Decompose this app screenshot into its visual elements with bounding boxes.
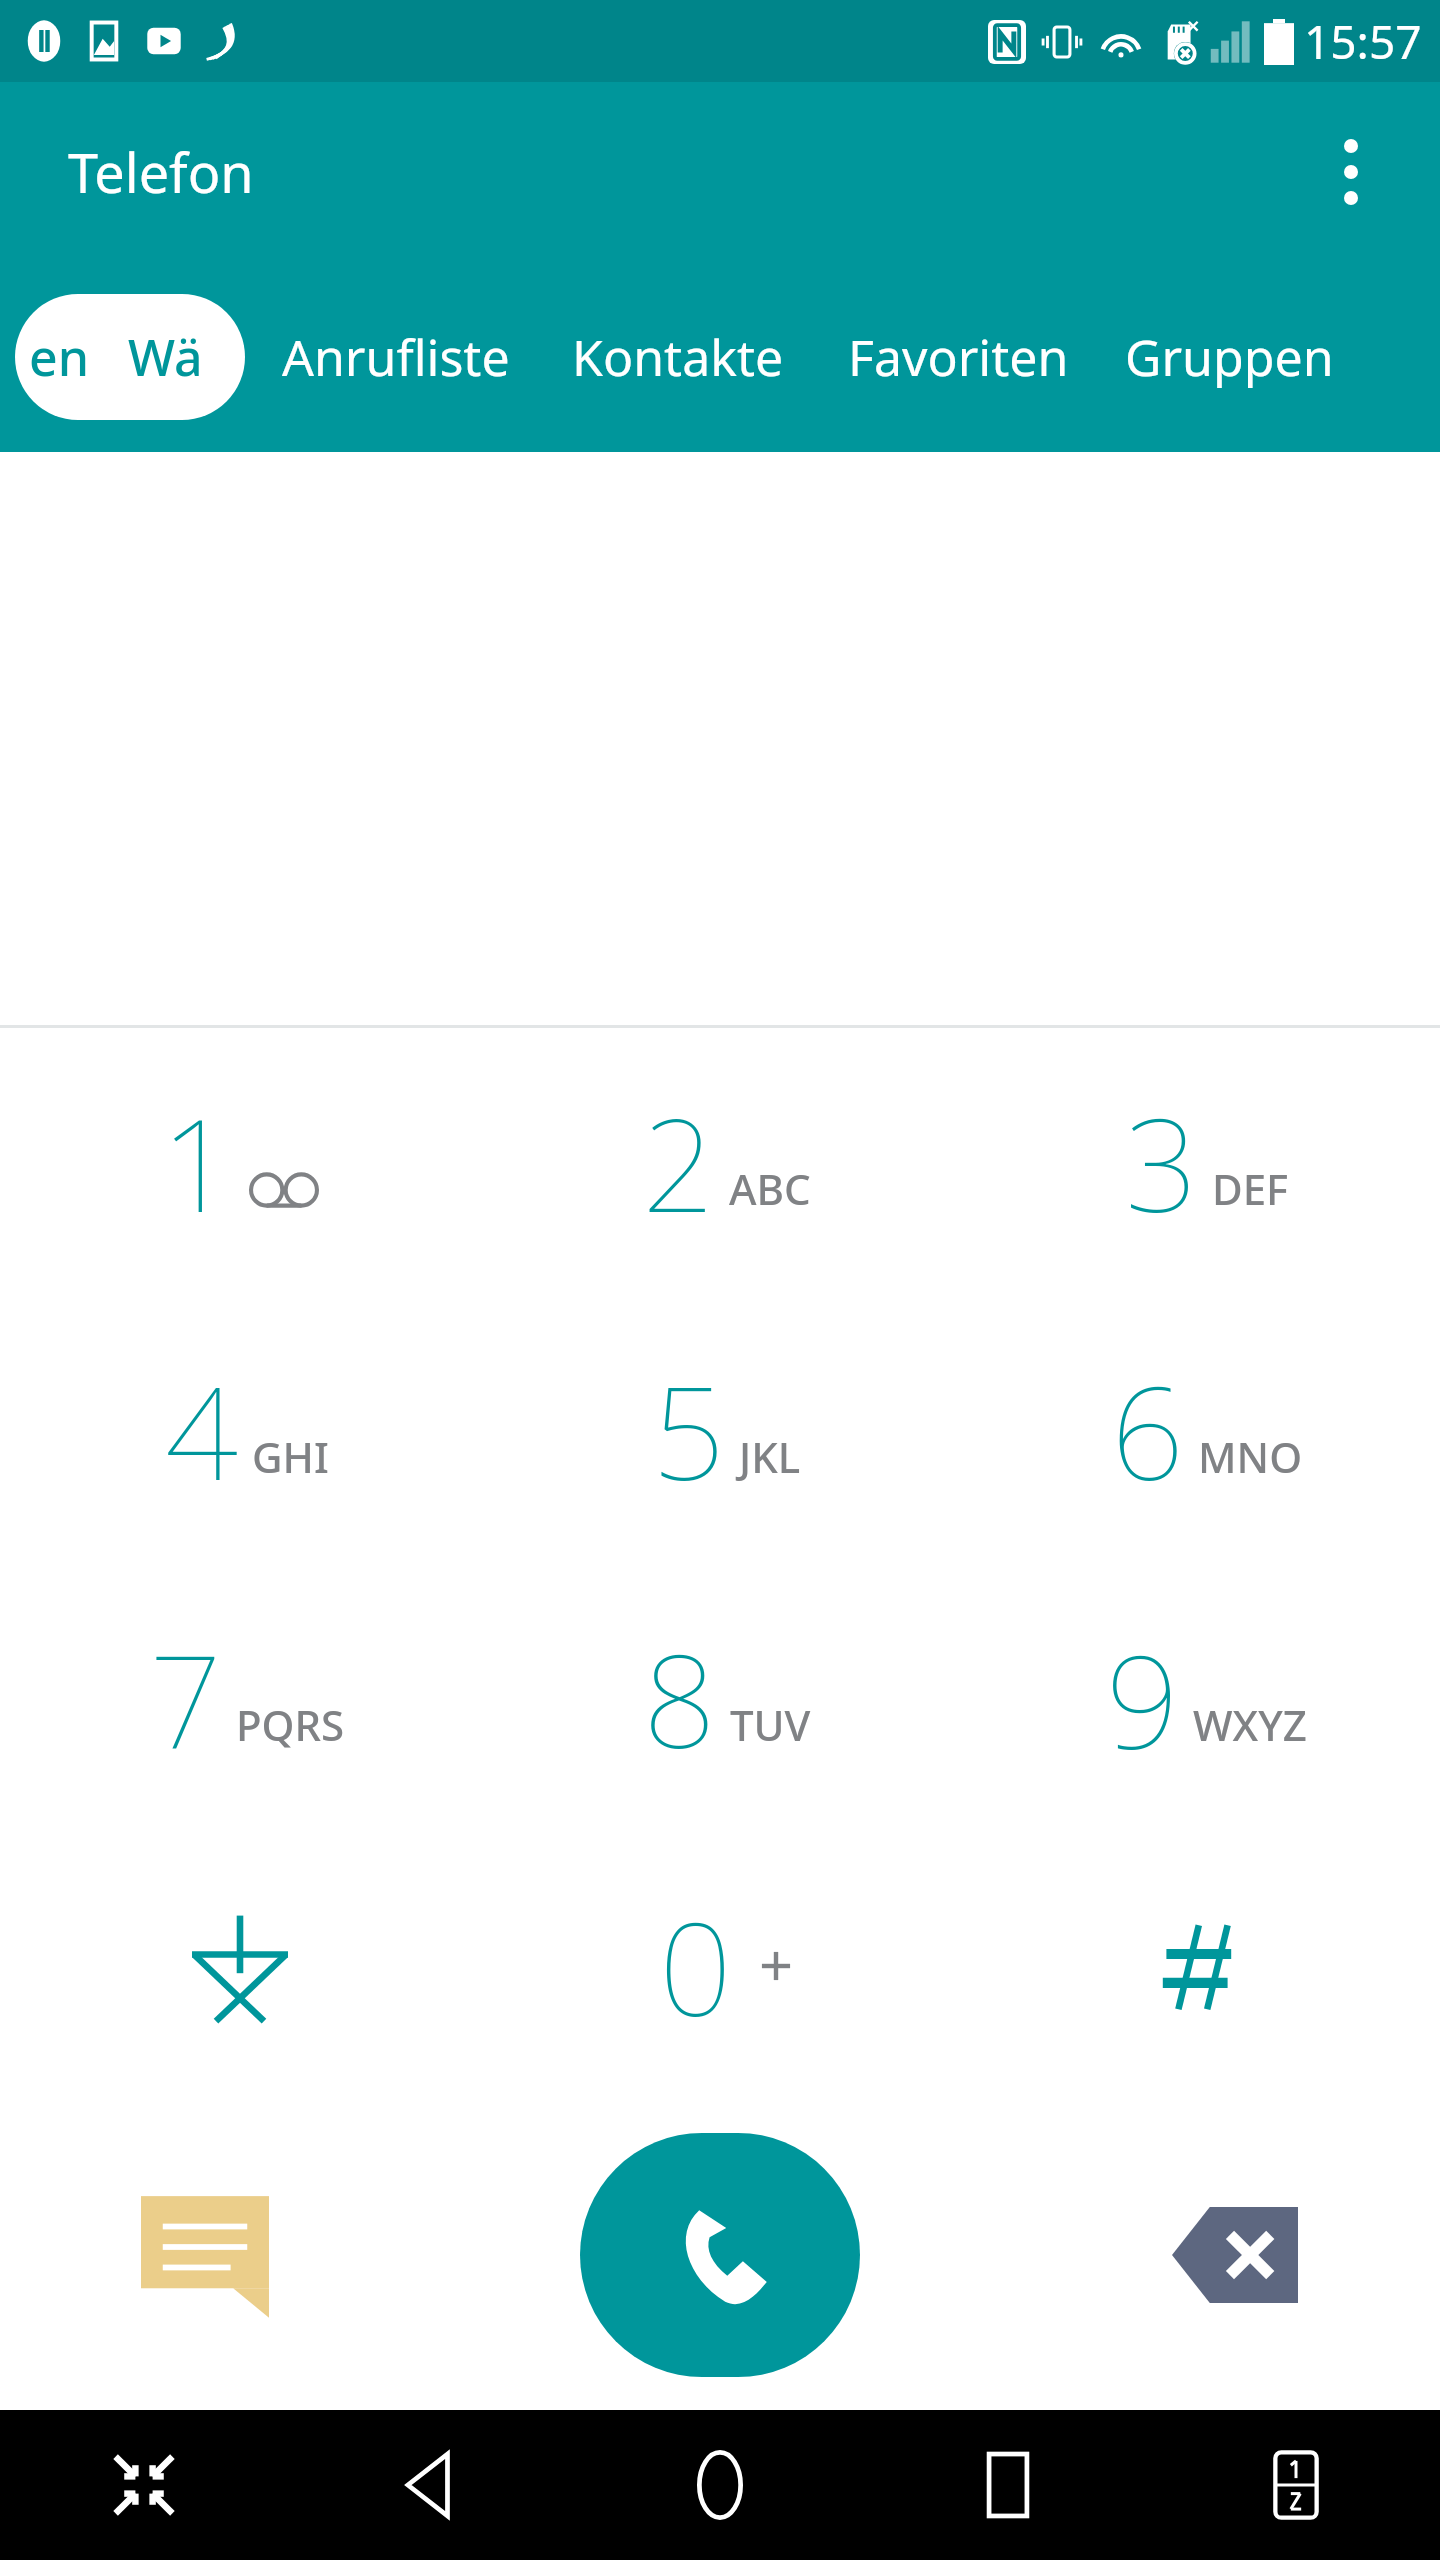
- staticText: MNO: [1198, 1428, 1303, 1485]
- button[interactable]: Split screen: [1152, 2410, 1440, 2560]
- staticText: WXYZ: [1193, 1696, 1307, 1753]
- staticText: DEF: [1212, 1160, 1289, 1217]
- button[interactable]: 2: [480, 1028, 960, 1296]
- staticText: TUV: [730, 1696, 811, 1753]
- staticText: ABC: [729, 1160, 811, 1217]
- staticText: en Wä: [29, 323, 203, 391]
- button[interactable]: Back: [288, 2410, 576, 2560]
- staticText: 3: [1125, 1075, 1198, 1249]
- button[interactable]: 9: [960, 1564, 1440, 1832]
- staticText: PQRS: [236, 1696, 345, 1753]
- staticText: Gruppen: [1125, 323, 1334, 391]
- button[interactable]: 5: [480, 1296, 960, 1564]
- button[interactable]: 8: [480, 1564, 960, 1832]
- button[interactable]: [0, 1832, 480, 2100]
- button[interactable]: [960, 1832, 1440, 2100]
- staticText: Kontakte: [572, 323, 784, 391]
- button[interactable]: Backspace: [1160, 2180, 1310, 2330]
- button[interactable]: Recents: [864, 2410, 1152, 2560]
- staticText: Anrufliste: [282, 323, 510, 391]
- staticText: 5: [652, 1343, 725, 1517]
- button[interactable]: Gruppen: [1125, 262, 1334, 452]
- staticText: Favoriten: [848, 323, 1069, 391]
- staticText: 6: [1111, 1343, 1184, 1517]
- staticText: 0: [659, 1879, 732, 2053]
- button[interactable]: Kontakte: [572, 262, 784, 452]
- button[interactable]: Send message: [130, 2180, 280, 2330]
- staticText: 2: [642, 1075, 715, 1249]
- staticText: 8: [643, 1611, 716, 1785]
- button[interactable]: Anrufliste: [282, 262, 510, 452]
- button[interactable]: 4: [0, 1296, 480, 1564]
- staticText: Telefon: [68, 135, 254, 209]
- staticText: GHI: [252, 1428, 329, 1485]
- staticText: 7: [149, 1611, 222, 1785]
- button[interactable]: 7: [0, 1564, 480, 1832]
- button[interactable]: 0: [480, 1832, 960, 2100]
- button[interactable]: 3: [960, 1028, 1440, 1296]
- button[interactable]: Call: [580, 2133, 860, 2377]
- button[interactable]: Favoriten: [848, 262, 1069, 452]
- staticText: 15:57: [1304, 10, 1422, 73]
- button[interactable]: en Wä: [15, 294, 245, 420]
- button[interactable]: More options: [1306, 127, 1396, 217]
- staticText: JKL: [739, 1428, 801, 1485]
- button[interactable]: Minimize: [0, 2410, 288, 2560]
- button[interactable]: 6: [960, 1296, 1440, 1564]
- button[interactable]: 1: [0, 1028, 480, 1296]
- staticText: 1: [161, 1075, 231, 1249]
- staticText: 4: [165, 1343, 238, 1517]
- button[interactable]: Home: [576, 2410, 864, 2560]
- staticText: 9: [1106, 1611, 1179, 1785]
